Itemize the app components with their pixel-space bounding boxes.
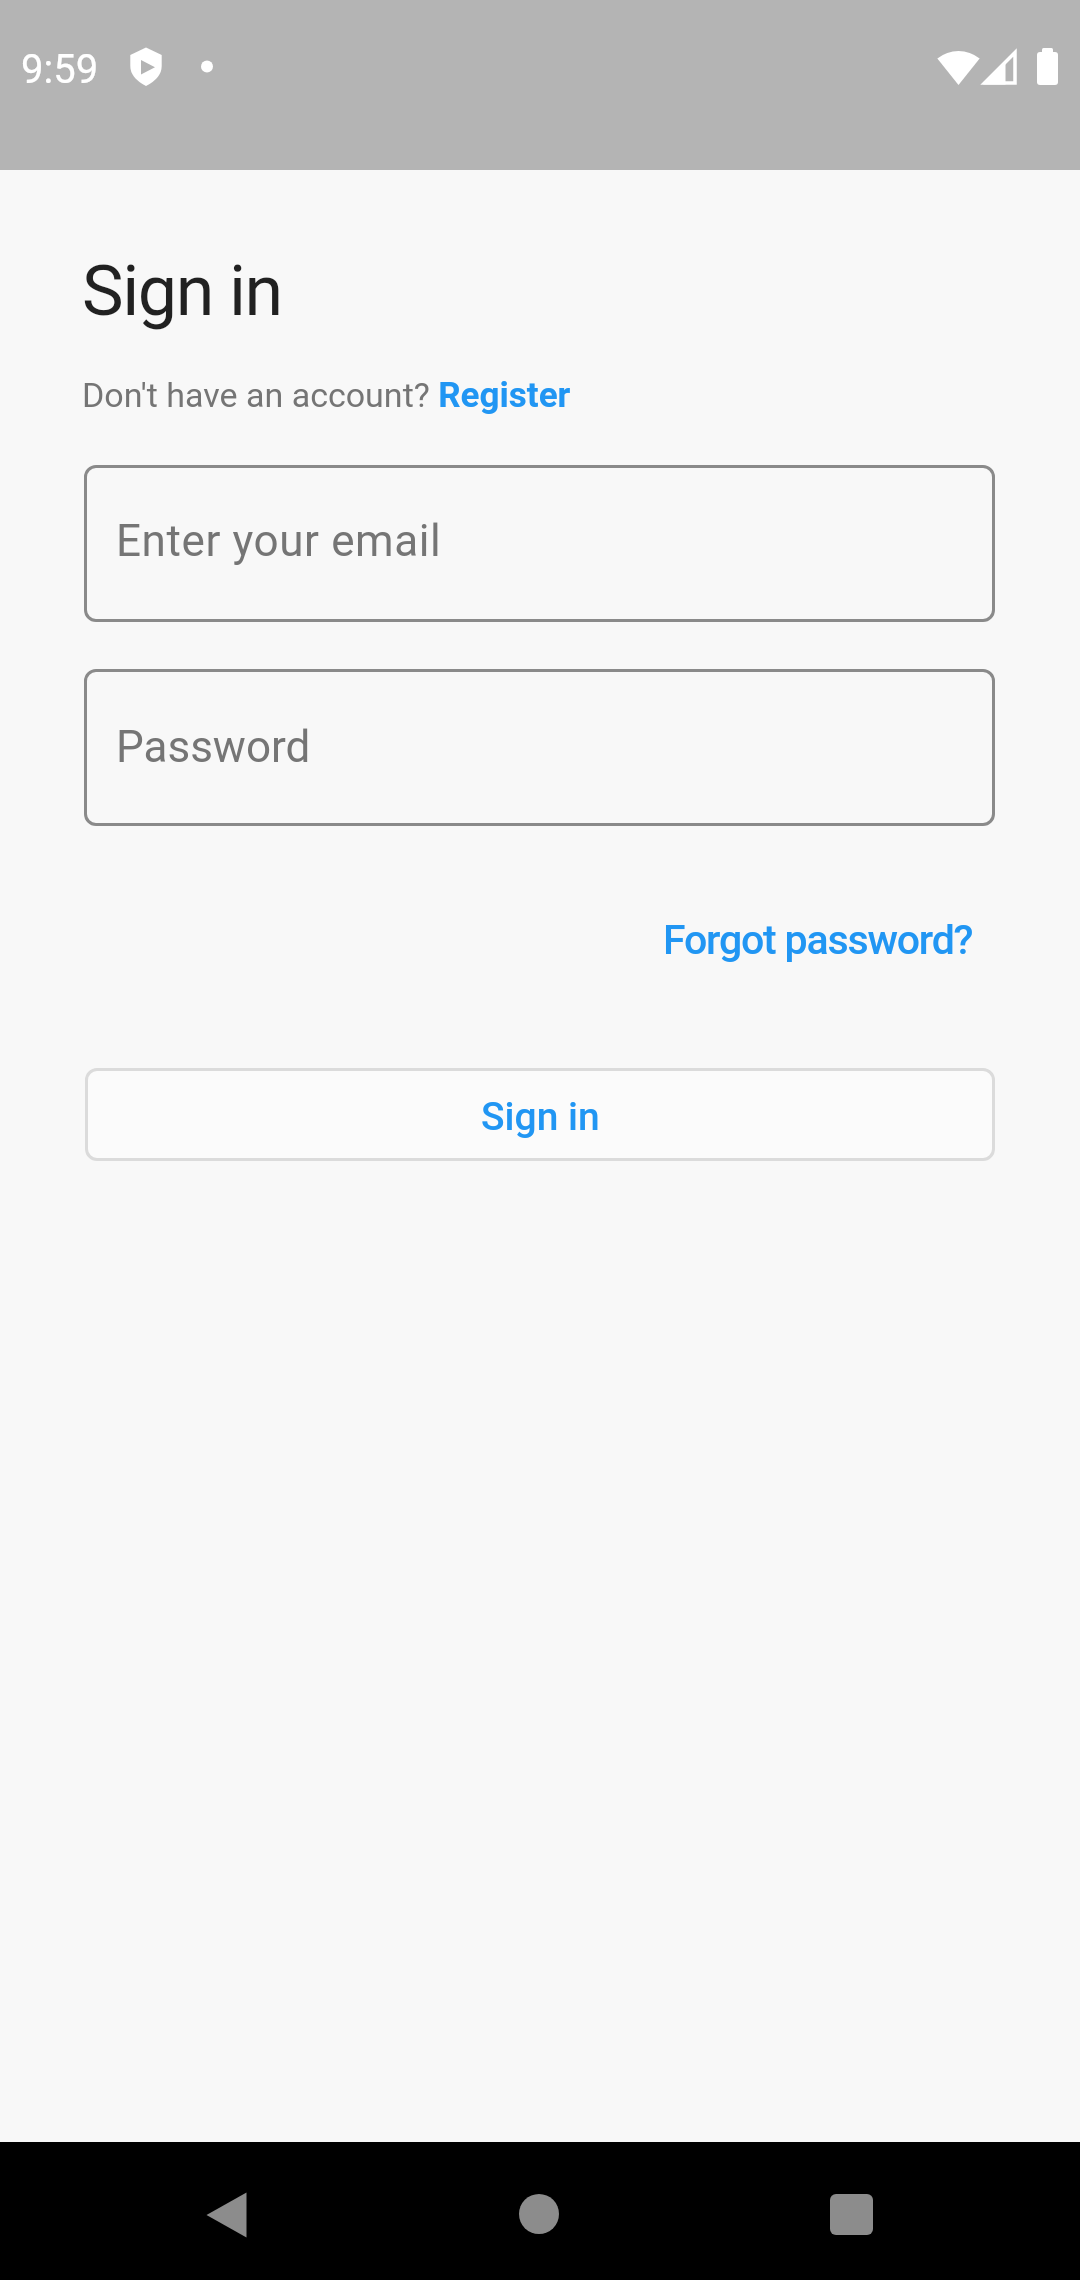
button[interactable] [186,2175,266,2255]
button[interactable]: Don't have an account? Register [82,375,571,416]
button[interactable] [810,2174,890,2254]
staticText: Password [116,721,311,773]
button[interactable]: Enter your email [84,465,995,622]
button[interactable]: Password [84,669,995,826]
staticText: Sign in [82,250,282,332]
staticText: Enter your email [116,515,442,567]
button[interactable]: Forgot password? [663,916,973,964]
staticText: Sign in [481,1094,600,1140]
button[interactable] [499,2174,579,2254]
button[interactable]: Sign in [85,1068,995,1161]
staticText: 9:59 [21,46,99,93]
